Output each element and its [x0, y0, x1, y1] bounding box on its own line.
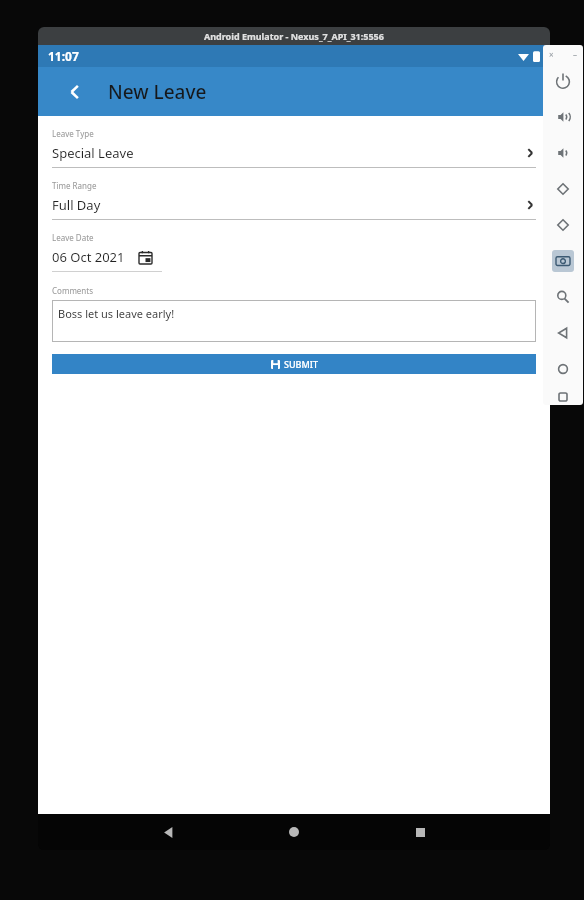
button[interactable]: Back	[58, 75, 92, 109]
staticText: Full Day	[52, 196, 524, 214]
button[interactable]: Home	[279, 817, 309, 847]
button[interactable]: Rotate left	[545, 171, 581, 207]
button[interactable]: Recents	[545, 387, 581, 405]
button[interactable]: Time Range	[52, 180, 536, 220]
staticText: Comments	[52, 285, 94, 296]
staticText: Time Range	[52, 180, 97, 191]
button[interactable]: Rotate right	[545, 207, 581, 243]
staticText: New Leave	[108, 79, 207, 105]
staticText: Special Leave	[52, 144, 524, 162]
button[interactable]: Zoom	[545, 279, 581, 315]
button[interactable]: Back	[545, 315, 581, 351]
button[interactable]: Leave Date	[52, 232, 162, 272]
button[interactable]: Screenshot	[545, 243, 581, 279]
button[interactable]: Back	[153, 817, 183, 847]
button[interactable]: Volume down	[545, 135, 581, 171]
staticText: Leave Type	[52, 128, 94, 139]
button[interactable]: Recents	[405, 817, 435, 847]
staticText: 06 Oct 2021	[52, 248, 125, 266]
button[interactable]: Leave Type	[52, 128, 536, 168]
staticText: –	[573, 49, 577, 60]
button[interactable]: Volume up	[545, 99, 581, 135]
staticText: 11:07	[48, 48, 79, 64]
button[interactable]: Home	[545, 351, 581, 387]
staticText: ×	[549, 49, 554, 60]
button[interactable]: Boss let us leave early!	[52, 300, 536, 342]
staticText: Leave Date	[52, 232, 94, 243]
staticText: Android Emulator - Nexus_7_API_31:5556	[204, 30, 384, 42]
button[interactable]: Power	[545, 63, 581, 99]
staticText: Boss let us leave early!	[58, 306, 175, 321]
staticText: SUBMIT	[284, 358, 318, 370]
button[interactable]: SUBMIT	[52, 354, 536, 374]
